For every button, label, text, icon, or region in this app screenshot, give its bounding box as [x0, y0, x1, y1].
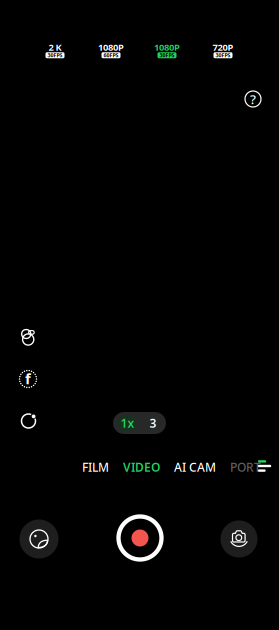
button[interactable]: 720P [195, 38, 251, 64]
staticText: 60FPS [103, 52, 118, 59]
button[interactable]: 2 K [27, 38, 83, 64]
button[interactable]: More modes [258, 455, 278, 477]
staticText: AI CAM [174, 459, 216, 475]
button[interactable]: PORT [230, 457, 261, 477]
staticText: 30FPS [159, 52, 174, 59]
button[interactable]: VIDEO [123, 457, 160, 477]
button[interactable]: FILM [82, 457, 109, 477]
staticText: 30FPS [47, 52, 62, 59]
staticText: f [25, 369, 31, 388]
staticText: 2 K [48, 41, 61, 53]
staticText: 1x [120, 415, 134, 431]
staticText: 720P [212, 41, 233, 53]
button[interactable]: 1080P [83, 38, 139, 64]
staticText: 1080P [154, 41, 180, 53]
button[interactable]: Effects [15, 515, 63, 563]
button[interactable]: Help [238, 84, 268, 114]
button[interactable]: 3 [145, 414, 161, 431]
staticText: ? [250, 90, 256, 108]
button[interactable]: 1080P [139, 38, 195, 64]
staticText: VIDEO [123, 459, 160, 475]
button[interactable]: Timer [13, 406, 43, 436]
staticText: PORT [230, 459, 261, 475]
button[interactable]: Switch camera [215, 515, 263, 563]
button[interactable]: 1x [118, 414, 137, 431]
staticText: FILM [82, 459, 109, 475]
staticText: 3 [149, 415, 156, 431]
staticText: 30FPS [215, 52, 230, 59]
button[interactable]: Bokeh [13, 322, 43, 352]
button[interactable]: Aperture [13, 364, 43, 394]
staticText: 1080P [98, 41, 124, 53]
button[interactable]: Record [112, 510, 168, 566]
button[interactable]: AI CAM [174, 457, 216, 477]
